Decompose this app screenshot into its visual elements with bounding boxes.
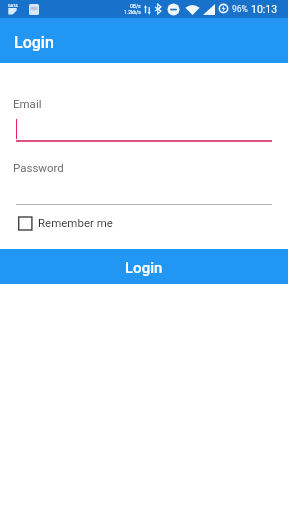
button[interactable]: Password — [13, 156, 275, 206]
button[interactable]: Remember me — [18, 215, 113, 230]
staticText: Email — [13, 97, 42, 110]
button[interactable]: Login — [0, 249, 288, 284]
staticText: 96% — [232, 4, 248, 14]
staticText: DATA — [8, 3, 18, 8]
staticText: 0B/s — [130, 3, 141, 9]
staticText: Password — [13, 161, 64, 174]
staticText: 1.2kb/s — [124, 9, 141, 15]
staticText: Login — [14, 33, 54, 52]
button[interactable]: Email — [13, 93, 275, 142]
staticText: 10:13 — [251, 3, 278, 15]
staticText: Remember me — [38, 216, 113, 229]
staticText: Login — [125, 259, 163, 277]
